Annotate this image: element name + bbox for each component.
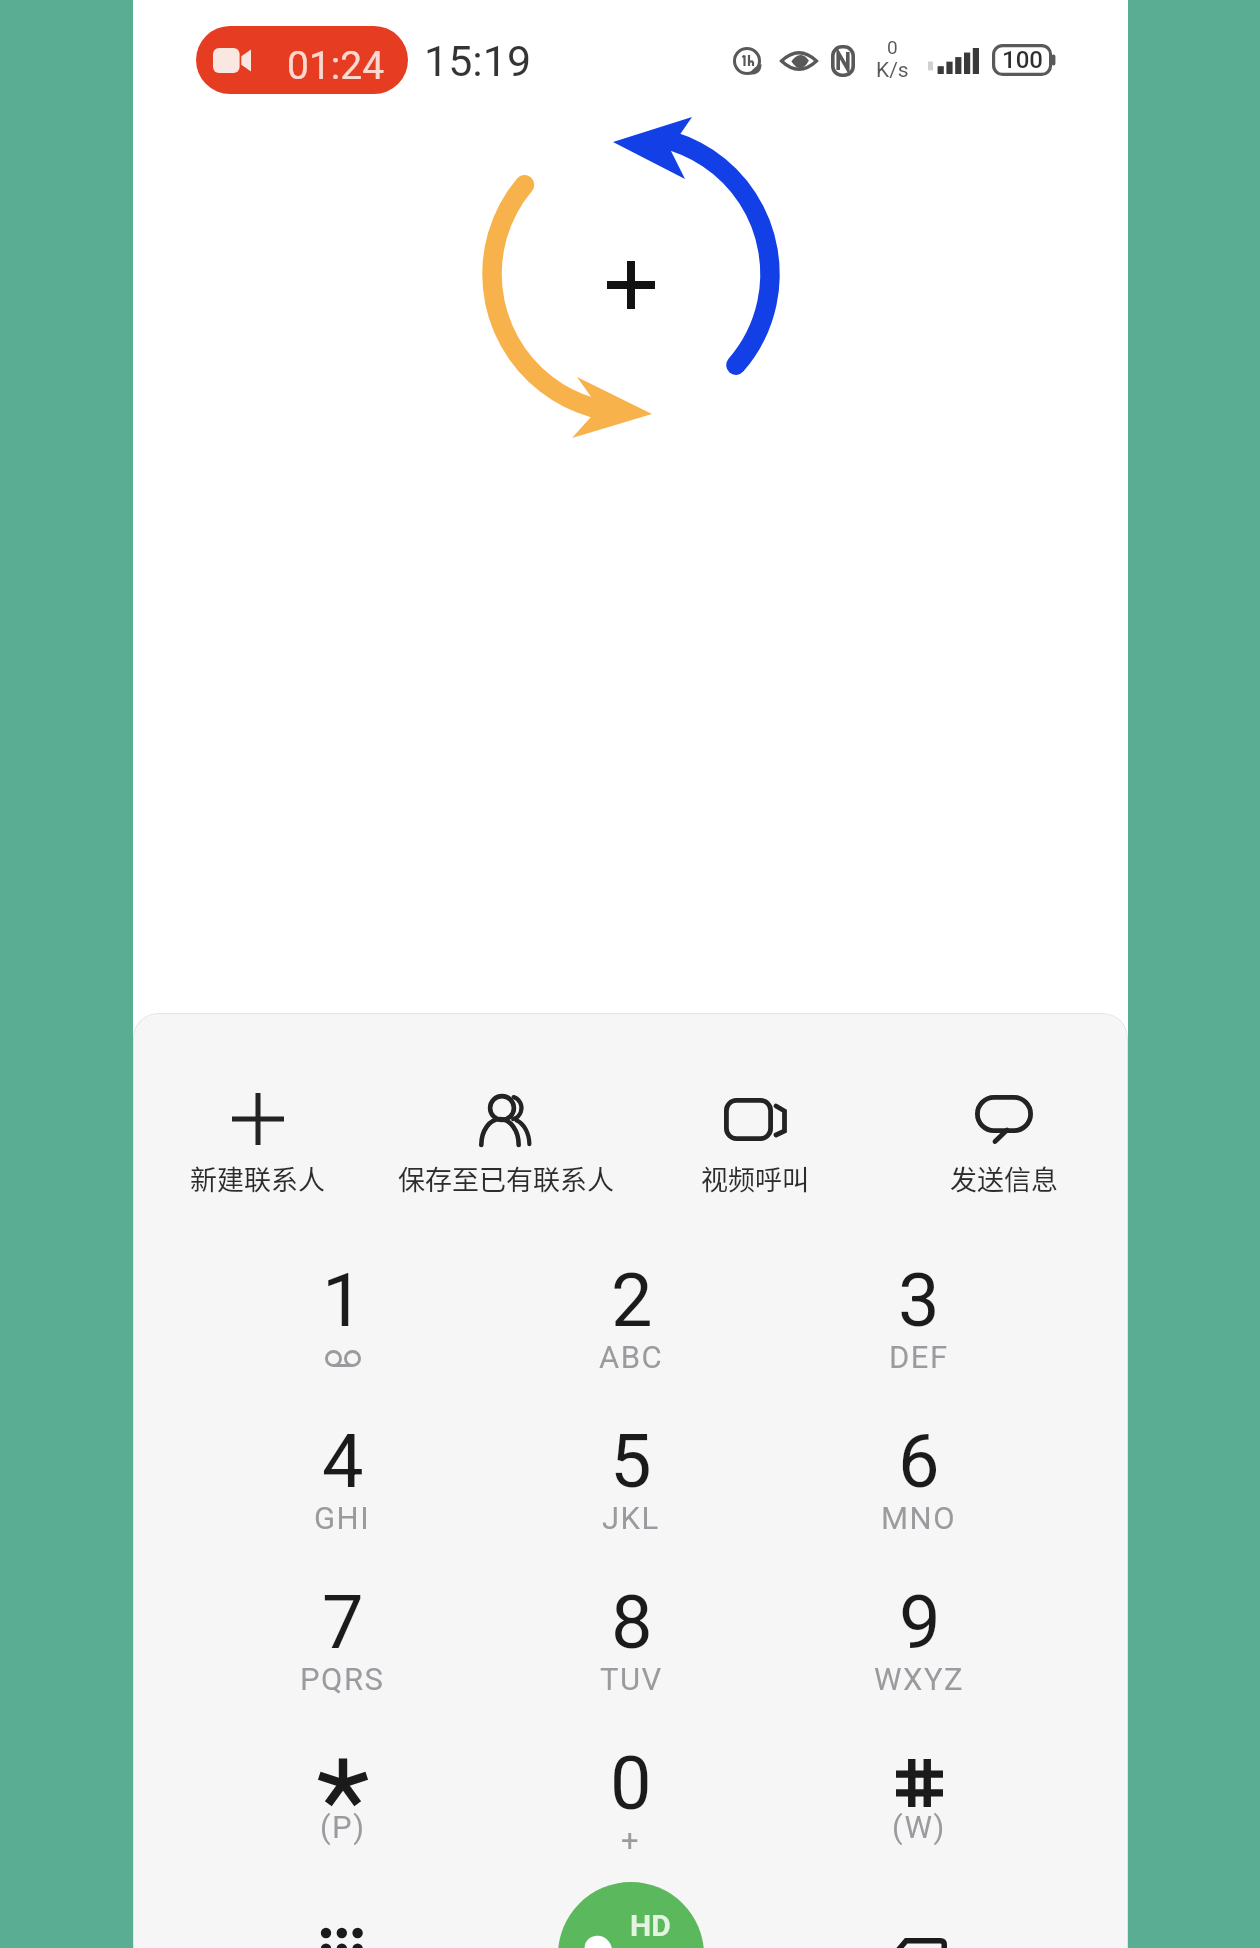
staticText: + [621, 1822, 641, 1858]
staticText: 5 [610, 1418, 652, 1505]
staticText: 0 [887, 36, 898, 58]
staticText: TUV [600, 1661, 663, 1697]
staticText: 视频呼叫 [701, 1159, 809, 1198]
staticText: WXYZ [874, 1661, 965, 1697]
staticText: 发送信息 [950, 1159, 1058, 1198]
button[interactable]: 保存至已有联系人 [381, 1089, 630, 1229]
button[interactable]: 视频呼叫 [630, 1089, 879, 1229]
button[interactable]: 0 [487, 1703, 775, 1864]
staticText: 1 [322, 1257, 364, 1344]
staticText: K/s [876, 58, 909, 83]
staticText: 7 [322, 1579, 364, 1666]
staticText: PQRS [300, 1661, 385, 1697]
button[interactable]: Call timer [196, 26, 408, 94]
button[interactable]: 新建联系人 [133, 1089, 381, 1229]
button[interactable]: Call [558, 1882, 704, 1948]
staticText: HD [630, 1908, 671, 1943]
button[interactable]: 发送信息 [879, 1089, 1128, 1229]
button[interactable]: 7 [198, 1542, 487, 1703]
staticText: DEF [889, 1339, 949, 1375]
button[interactable]: Dialpad options [311, 1903, 371, 1948]
staticText: ABC [599, 1339, 664, 1375]
staticText: 2 [611, 1257, 653, 1344]
staticText: 100 [1002, 46, 1043, 74]
staticText: GHI [314, 1500, 371, 1536]
button[interactable]: 8 [487, 1542, 775, 1703]
staticText: 保存至已有联系人 [398, 1159, 614, 1198]
button[interactable]: 9 [775, 1542, 1063, 1703]
staticText: 0 [610, 1740, 652, 1827]
button[interactable]: (P) [198, 1703, 487, 1864]
staticText: 01:24 [287, 43, 385, 89]
button[interactable]: 2 [487, 1220, 775, 1381]
staticText: 9 [899, 1579, 941, 1666]
button[interactable]: 3 [775, 1220, 1063, 1381]
staticText: 3 [898, 1257, 940, 1344]
staticText: 新建联系人 [190, 1159, 325, 1198]
staticText: MNO [881, 1500, 957, 1536]
button[interactable]: 1 [198, 1220, 487, 1381]
staticText: (P) [320, 1809, 366, 1845]
button[interactable]: (W) [775, 1703, 1063, 1864]
button[interactable]: Backspace [885, 1908, 949, 1948]
staticText: JKL [602, 1500, 660, 1536]
button[interactable]: 6 [775, 1381, 1063, 1542]
staticText: 4 [322, 1418, 364, 1505]
staticText: 6 [898, 1418, 940, 1505]
button[interactable]: 4 [198, 1381, 487, 1542]
button[interactable]: 5 [487, 1381, 775, 1542]
staticText: 8 [611, 1579, 653, 1666]
staticText: 15:19 [424, 36, 532, 86]
staticText: (W) [892, 1809, 946, 1845]
